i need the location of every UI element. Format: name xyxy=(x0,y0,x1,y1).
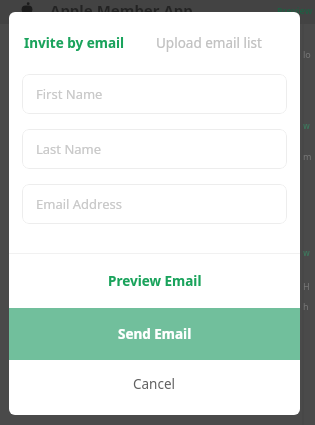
staticText: Send Email xyxy=(118,325,192,343)
staticText: Cancel xyxy=(133,375,176,393)
staticText: Preview xyxy=(277,4,313,16)
button[interactable]: Upload email list xyxy=(154,26,264,60)
button[interactable]: Invite by email xyxy=(22,26,127,60)
staticText: h xyxy=(303,300,309,312)
button[interactable]: Email Address xyxy=(22,184,287,224)
staticText: w xyxy=(303,247,310,258)
button[interactable]: First Name xyxy=(22,74,287,114)
staticText: Email Address xyxy=(36,195,122,213)
button[interactable]: Cancel xyxy=(9,360,300,407)
staticText: lo xyxy=(303,48,311,60)
staticText: First Name xyxy=(36,85,103,103)
button[interactable]: Preview Email xyxy=(9,254,300,308)
staticText: Last Name xyxy=(36,140,102,158)
button[interactable]: Last Name xyxy=(22,129,287,169)
button[interactable]: Send Email xyxy=(9,308,300,360)
staticText: Upload email list xyxy=(156,34,262,52)
staticText: m xyxy=(303,150,312,162)
staticText: Apple Member App xyxy=(50,0,193,20)
staticText: Preview Email xyxy=(108,272,202,290)
staticText: w xyxy=(303,120,310,131)
staticText: Invite by email xyxy=(24,34,125,52)
staticText: H xyxy=(303,280,310,292)
